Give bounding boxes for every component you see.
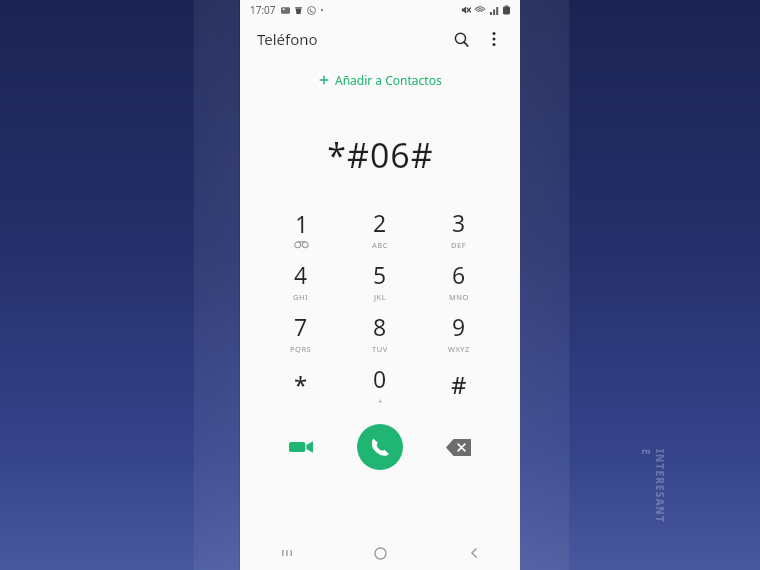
button[interactable]: 4 <box>262 254 340 306</box>
button[interactable]: Backspace <box>419 416 498 478</box>
staticText: 6 <box>452 259 466 290</box>
button[interactable]: More options <box>479 24 509 54</box>
staticText: 7 <box>294 311 308 342</box>
staticText: MNO <box>449 292 469 302</box>
button[interactable]: Home <box>334 536 427 570</box>
button[interactable]: # <box>419 358 498 410</box>
staticText: 17:07 <box>250 3 276 17</box>
staticText: JKL <box>374 292 387 302</box>
button[interactable]: 5 <box>340 254 419 306</box>
button[interactable]: 6 <box>419 254 498 306</box>
staticText: 2 <box>373 207 387 238</box>
button[interactable]: Back <box>427 536 520 570</box>
button[interactable]: 2 <box>340 202 419 254</box>
button[interactable]: Añadir a Contactos <box>310 68 450 92</box>
staticText: WXYZ <box>448 344 470 354</box>
staticText: ABC <box>372 240 388 250</box>
staticText: GHI <box>293 292 309 302</box>
staticText: 0 <box>373 363 387 394</box>
staticText: 1 <box>295 208 309 239</box>
button[interactable]: 0 <box>340 358 419 410</box>
button[interactable]: Search <box>446 24 476 54</box>
staticText: 8 <box>373 311 387 342</box>
staticText: INTERESANTE <box>639 449 667 523</box>
staticText: *#06# <box>327 132 434 178</box>
staticText: PQRS <box>290 344 312 354</box>
staticText: Añadir a Contactos <box>335 72 442 88</box>
button[interactable]: Video call <box>262 416 340 478</box>
button[interactable]: 9 <box>419 306 498 358</box>
staticText: DEF <box>451 240 467 250</box>
button[interactable]: 1 <box>262 202 340 254</box>
staticText: 5 <box>373 259 387 290</box>
staticText: # <box>451 368 467 401</box>
button[interactable]: 7 <box>262 306 340 358</box>
staticText: TUV <box>372 344 388 354</box>
button[interactable]: 3 <box>419 202 498 254</box>
staticText: + <box>378 396 383 406</box>
staticText: 4 <box>294 259 308 290</box>
button[interactable]: Recents <box>240 536 334 570</box>
staticText: 9 <box>452 311 466 342</box>
button[interactable]: 8 <box>340 306 419 358</box>
button[interactable]: Call <box>357 424 403 470</box>
staticText: 3 <box>452 207 466 238</box>
staticText: Teléfono <box>257 29 318 49</box>
staticText: * <box>294 368 308 401</box>
button[interactable]: * <box>262 358 340 410</box>
